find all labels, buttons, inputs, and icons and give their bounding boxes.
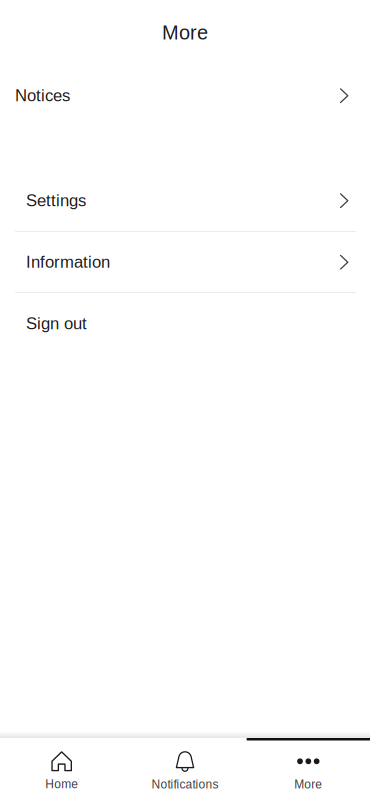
staticText: Notices bbox=[15, 86, 70, 105]
staticText: More bbox=[294, 778, 322, 791]
button[interactable]: Notifications bbox=[123, 738, 247, 800]
button[interactable]: Settings bbox=[0, 170, 370, 231]
button[interactable]: More bbox=[247, 738, 370, 800]
staticText: More bbox=[162, 21, 208, 44]
staticText: Home bbox=[45, 777, 78, 791]
button[interactable]: Home bbox=[0, 738, 123, 800]
button[interactable]: Notices bbox=[0, 65, 370, 126]
staticText: Information bbox=[26, 253, 110, 271]
staticText: Notifications bbox=[151, 778, 218, 791]
button[interactable]: Sign out bbox=[0, 293, 370, 354]
staticText: Settings bbox=[26, 191, 86, 210]
staticText: Sign out bbox=[26, 314, 87, 333]
button[interactable]: Information bbox=[0, 232, 370, 292]
